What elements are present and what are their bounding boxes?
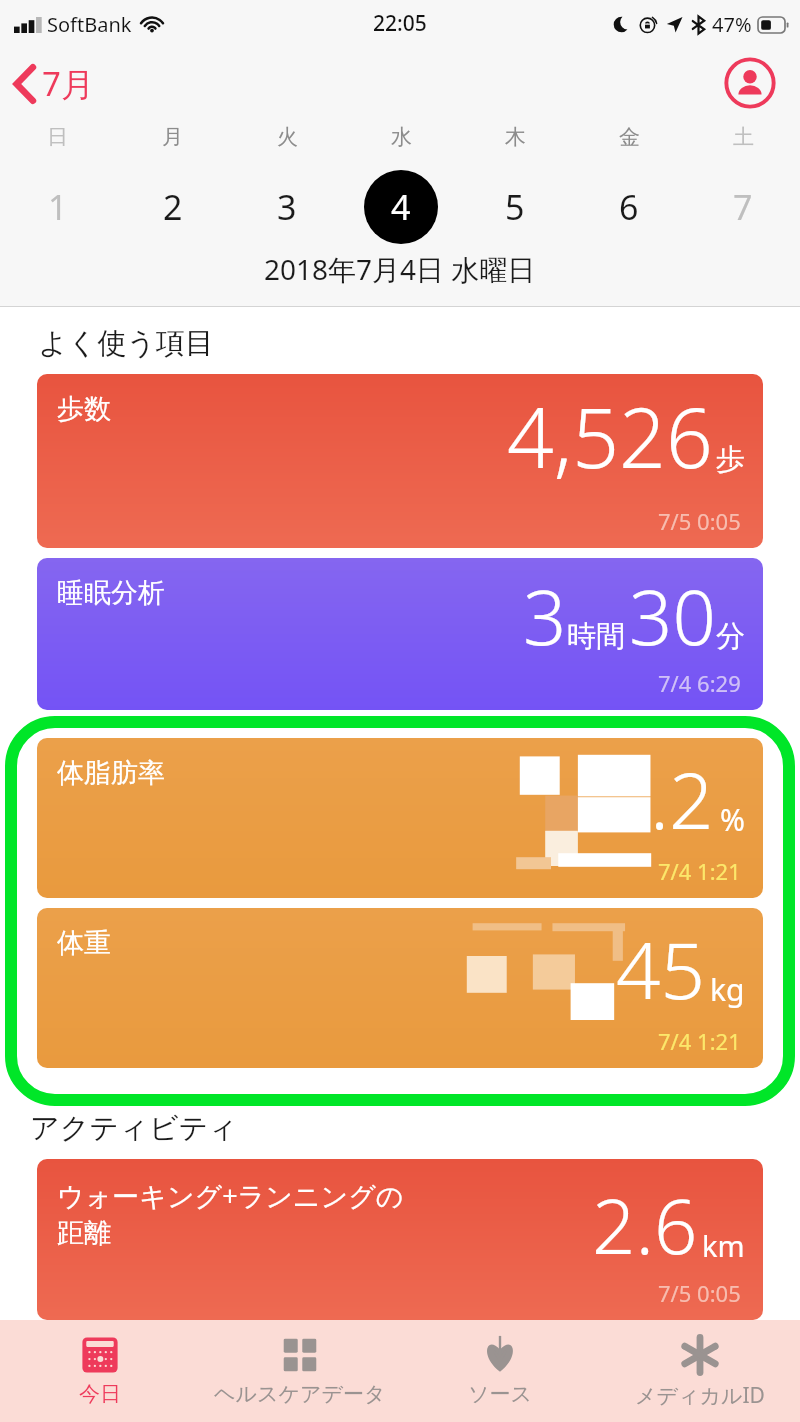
staticText: 距離 xyxy=(57,1216,111,1250)
staticText: 水 xyxy=(391,124,412,150)
staticText: 歩数 xyxy=(57,392,111,426)
button[interactable]: 7 xyxy=(686,170,800,244)
staticText: 木 xyxy=(505,124,526,150)
staticText: アクティビティ xyxy=(30,1110,238,1147)
staticText: ウォーキング+ランニングの xyxy=(57,1177,404,1214)
button[interactable]: 今日 xyxy=(0,1320,200,1422)
button[interactable]: 2 xyxy=(115,170,230,244)
staticText: 体重 xyxy=(57,926,111,960)
staticText: ソース xyxy=(468,1381,532,1407)
button[interactable]: 歩数 xyxy=(37,374,763,548)
staticText: 4,526 xyxy=(507,380,713,492)
staticText: .45 xyxy=(597,916,706,1022)
staticText: ヘルスケアデータ xyxy=(214,1381,386,1407)
staticText: 金 xyxy=(619,124,640,150)
button[interactable]: 睡眠分析 xyxy=(37,558,763,710)
staticText: .2 xyxy=(650,746,714,852)
staticText: 分 xyxy=(716,618,745,655)
staticText: 日 xyxy=(47,124,68,150)
staticText: 7/4 1:21 xyxy=(658,1026,741,1056)
button[interactable]: 5 xyxy=(458,170,572,244)
staticText: 2.6 xyxy=(592,1173,698,1277)
staticText: kg xyxy=(710,969,745,1010)
staticText: 6 xyxy=(619,184,639,230)
staticText: 30 xyxy=(629,564,716,668)
staticText: 7/4 6:29 xyxy=(658,668,741,698)
staticText: km xyxy=(702,1226,745,1265)
staticText: 7/5 0:05 xyxy=(658,506,741,536)
staticText: 7/4 1:21 xyxy=(658,856,741,886)
button[interactable]: ソース xyxy=(400,1320,600,1422)
button[interactable]: ヘルスケアデータ xyxy=(200,1320,400,1422)
button[interactable]: 1 xyxy=(0,170,115,244)
staticText: 月 xyxy=(162,124,183,150)
staticText: 47% xyxy=(712,11,752,38)
staticText: 時間 xyxy=(567,618,625,655)
staticText: 2 xyxy=(163,184,183,230)
staticText: 3 xyxy=(277,184,297,230)
staticText: % xyxy=(720,799,745,840)
staticText: メディカルID xyxy=(635,1381,765,1410)
staticText: 4 xyxy=(391,184,411,230)
button[interactable]: 体脂肪率 xyxy=(37,738,763,898)
staticText: 7/5 0:05 xyxy=(658,1278,741,1308)
staticText: 今日 xyxy=(79,1381,121,1407)
staticText: 7月 xyxy=(42,61,94,106)
button[interactable]: プロフィール xyxy=(722,55,778,111)
button[interactable]: 4 xyxy=(344,170,458,244)
button[interactable]: 3 xyxy=(230,170,344,244)
staticText: 体脂肪率 xyxy=(57,756,165,790)
staticText: 土 xyxy=(733,124,754,150)
button[interactable]: 6 xyxy=(572,170,686,244)
button[interactable]: 7月 xyxy=(14,61,94,106)
staticText: 1 xyxy=(48,184,68,230)
staticText: 歩 xyxy=(716,441,745,478)
staticText: 5 xyxy=(505,184,525,230)
staticText: よく使う項目 xyxy=(38,325,215,362)
button[interactable]: メディカルID xyxy=(600,1320,800,1422)
staticText: 睡眠分析 xyxy=(57,576,165,610)
staticText: 火 xyxy=(277,124,298,150)
staticText: 7 xyxy=(733,184,753,230)
button[interactable]: 体重 xyxy=(37,908,763,1068)
staticText: 3 xyxy=(523,564,567,668)
staticText: 22:05 xyxy=(373,9,427,38)
staticText: 2018年7月4日 水曜日 xyxy=(264,250,536,288)
staticText: SoftBank xyxy=(47,11,132,38)
button[interactable]: ウォーキング+ランニングの xyxy=(37,1159,763,1320)
